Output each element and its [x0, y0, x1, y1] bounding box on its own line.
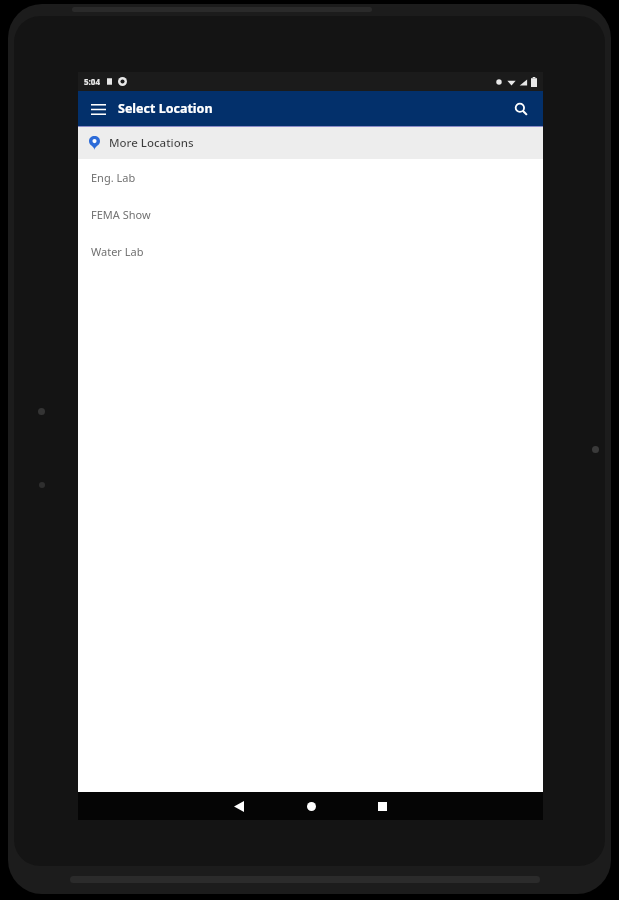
button[interactable]: Recent apps	[364, 792, 400, 820]
button[interactable]: Home	[293, 792, 329, 820]
button[interactable]: Water Lab	[78, 233, 543, 270]
button[interactable]: FEMA Show	[78, 196, 543, 233]
staticText: Water Lab	[91, 244, 144, 259]
staticText: Eng. Lab	[91, 170, 136, 185]
staticText: 5:04	[84, 76, 100, 87]
staticText: FEMA Show	[91, 207, 151, 222]
button[interactable]: Search	[507, 95, 535, 123]
button[interactable]: More Locations	[78, 127, 543, 159]
staticText: Select Location	[118, 100, 213, 117]
button[interactable]: Open navigation menu	[83, 94, 113, 124]
button[interactable]: Back	[221, 792, 257, 820]
button[interactable]: Eng. Lab	[78, 159, 543, 196]
staticText: More Locations	[109, 135, 194, 151]
